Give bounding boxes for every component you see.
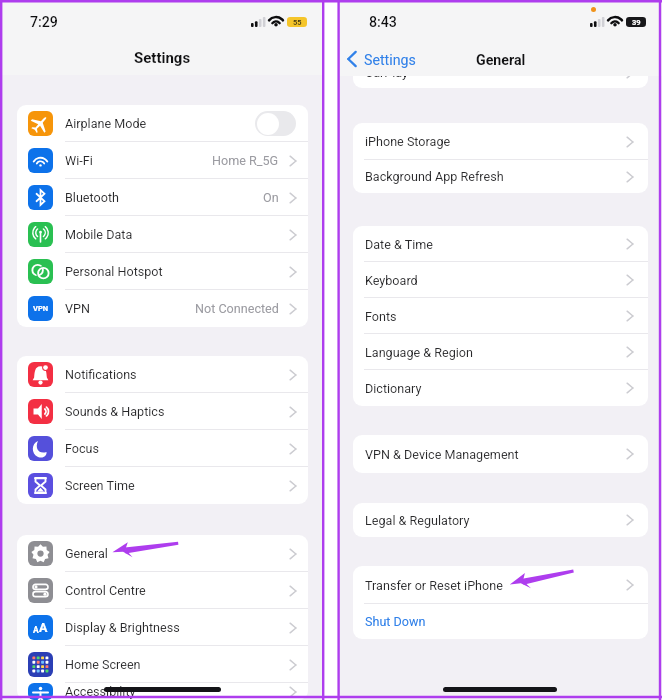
button[interactable]: Background App Refresh [353, 160, 648, 193]
staticText: Screen Time [65, 478, 135, 493]
staticText: VPN [65, 301, 90, 316]
button[interactable]: VPN & Device Management [353, 435, 648, 473]
staticText: Mobile Data [65, 227, 133, 242]
button[interactable]: Screen Time [17, 467, 308, 504]
button[interactable]: Back to Settings [347, 51, 357, 67]
staticText: Keyboard [365, 273, 418, 288]
button[interactable]: Airplane Mode [17, 105, 308, 142]
staticText: 55 [293, 18, 302, 27]
button[interactable]: Notifications [17, 356, 308, 393]
staticText: Personal Hotspot [65, 264, 163, 279]
staticText: Fonts [365, 309, 397, 324]
button[interactable]: iPhone Storage [353, 123, 648, 160]
button[interactable]: Home Screen [17, 646, 308, 683]
staticText: On [263, 190, 279, 205]
button[interactable]: General [17, 535, 308, 572]
button[interactable]: Wi-Fi [17, 142, 308, 179]
staticText: VPN [33, 304, 49, 313]
button[interactable]: CarPlay [353, 57, 648, 88]
staticText: Settings [134, 49, 191, 67]
staticText: Notifications [65, 367, 137, 382]
staticText: VPN & Device Management [365, 447, 519, 462]
button[interactable]: Control Centre [17, 572, 308, 609]
staticText: Wi-Fi [65, 153, 93, 168]
button[interactable]: Personal Hotspot [17, 253, 308, 290]
staticText: Background App Refresh [365, 169, 504, 184]
button[interactable]: Accessibility [17, 683, 308, 700]
staticText: 7:29 [30, 14, 58, 31]
staticText: Legal & Regulatory [365, 513, 470, 528]
staticText: 8:43 [369, 14, 397, 31]
staticText: Shut Down [365, 614, 426, 629]
staticText: Not Connected [195, 301, 279, 316]
staticText: General [476, 52, 526, 69]
button[interactable]: Date & Time [353, 226, 648, 262]
staticText: Transfer or Reset iPhone [365, 578, 503, 593]
button[interactable]: Sounds & Haptics [17, 393, 308, 430]
staticText: Home R_5G [212, 153, 279, 168]
button[interactable]: Legal & Regulatory [353, 503, 648, 537]
button[interactable]: A [17, 609, 308, 646]
staticText: Accessibility [65, 684, 136, 699]
button[interactable]: Mobile Data [17, 216, 308, 253]
staticText: Date & Time [365, 237, 434, 252]
staticText: Control Centre [65, 583, 146, 598]
button[interactable]: Shut Down [353, 604, 648, 639]
staticText: CarPlay [365, 65, 409, 80]
staticText: Display & Brightness [65, 620, 180, 635]
staticText: Focus [65, 441, 100, 456]
staticText: Language & Region [365, 345, 473, 360]
staticText: 39 [632, 18, 641, 27]
staticText: Dictionary [365, 381, 422, 396]
staticText: Sounds & Haptics [65, 404, 165, 419]
button[interactable]: Language & Region [353, 334, 648, 370]
staticText: General [65, 546, 108, 561]
staticText: Home Screen [65, 657, 141, 672]
button[interactable]: Settings [364, 52, 416, 69]
staticText: A [33, 625, 39, 635]
button[interactable]: VPN [17, 290, 308, 327]
staticText: Bluetooth [65, 190, 119, 205]
staticText: iPhone Storage [365, 134, 451, 149]
button[interactable]: Transfer or Reset iPhone [353, 566, 648, 604]
button[interactable]: Fonts [353, 298, 648, 334]
staticText: A [39, 620, 48, 635]
button[interactable]: Focus [17, 430, 308, 467]
button[interactable]: Dictionary [353, 370, 648, 406]
button[interactable]: Keyboard [353, 262, 648, 298]
staticText: Airplane Mode [65, 116, 147, 131]
button[interactable]: Bluetooth [17, 179, 308, 216]
